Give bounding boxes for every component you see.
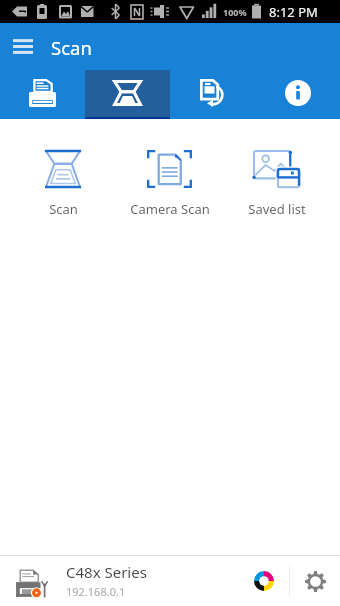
button[interactable]: Scan <box>10 119 116 218</box>
button[interactable]: Information <box>255 69 340 119</box>
staticText: 8:12 PM <box>269 3 318 21</box>
button[interactable]: Print <box>0 69 85 119</box>
button[interactable]: Scan <box>85 69 170 119</box>
staticText: 192.168.0.1 <box>66 584 126 599</box>
staticText: C48x Series <box>66 562 147 582</box>
staticText: Camera Scan <box>130 200 210 218</box>
button[interactable]: Saved list <box>223 119 330 218</box>
button[interactable]: Open navigation drawer <box>4 27 42 65</box>
staticText: Scan <box>51 35 92 60</box>
button[interactable]: Supplies status <box>239 556 289 606</box>
staticText: Saved list <box>248 200 306 218</box>
button[interactable]: Camera Scan <box>116 119 223 218</box>
staticText: Scan <box>49 200 78 218</box>
button[interactable]: C48x Series <box>0 556 239 606</box>
button[interactable]: Fax <box>170 69 255 119</box>
button[interactable]: Settings <box>290 556 340 606</box>
staticText: 100% <box>223 6 247 18</box>
